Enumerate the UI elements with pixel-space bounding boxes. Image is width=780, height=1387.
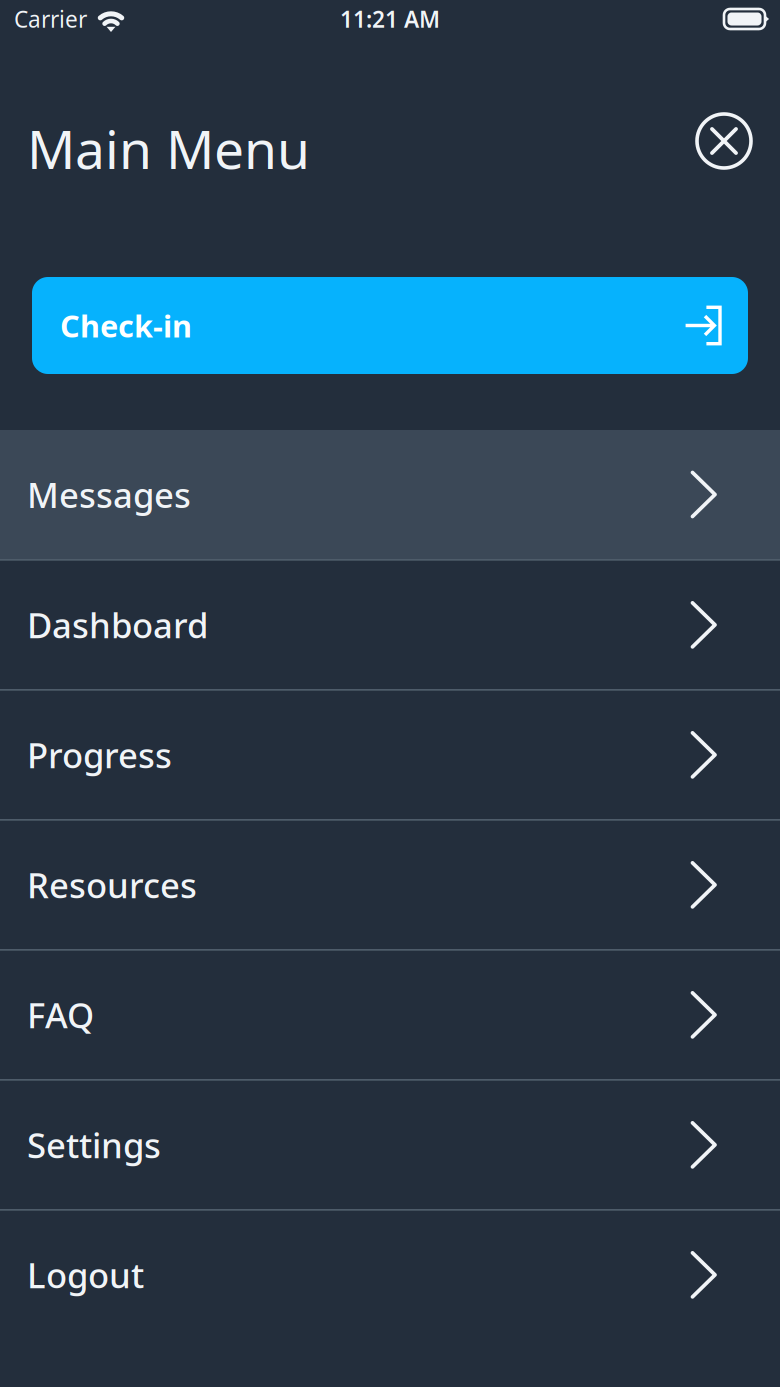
staticText: Settings (27, 1122, 161, 1168)
staticText: Logout (27, 1252, 144, 1298)
staticText: Carrier (14, 4, 87, 34)
staticText: Progress (27, 732, 172, 778)
button[interactable]: Logout (0, 1209, 780, 1339)
staticText: Messages (27, 471, 191, 517)
button[interactable]: FAQ (0, 949, 780, 1079)
staticText: Resources (27, 862, 197, 908)
staticText: 11:21 AM (340, 4, 440, 34)
staticText: Check-in (60, 305, 192, 346)
button[interactable]: Messages (0, 430, 780, 559)
button[interactable]: Close (696, 113, 752, 169)
button[interactable]: Progress (0, 689, 780, 819)
button[interactable]: Check-in (32, 277, 748, 374)
button[interactable]: Dashboard (0, 559, 780, 689)
staticText: FAQ (27, 992, 94, 1038)
button[interactable]: Settings (0, 1079, 780, 1209)
button[interactable]: Resources (0, 819, 780, 949)
staticText: Dashboard (27, 602, 208, 648)
staticText: Main Menu (27, 113, 310, 184)
